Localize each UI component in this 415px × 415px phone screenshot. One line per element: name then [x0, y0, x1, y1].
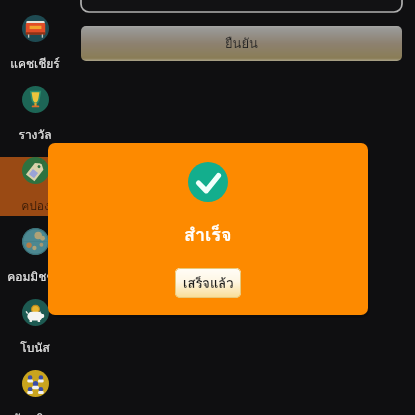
button[interactable]: เสร็จแล้ว — [175, 268, 241, 298]
button[interactable]: โบนัส — [0, 299, 70, 358]
staticText: เสร็จแล้ว — [183, 273, 234, 294]
button[interactable]: คปอง — [0, 157, 70, 216]
button[interactable]: แคชเชียร์ — [0, 15, 70, 74]
staticText: คอมมิชชั่น — [7, 267, 63, 286]
button[interactable]: ยืนยัน — [81, 26, 402, 61]
button[interactable]: Amount input field — [81, 0, 402, 12]
staticText: สำเร็จ — [184, 220, 232, 249]
staticText: ยืนยัน — [225, 33, 259, 54]
button[interactable]: พันธมิตร — [0, 370, 70, 415]
staticText: แคชเชียร์ — [10, 54, 60, 73]
button[interactable]: รางวัล — [0, 86, 70, 145]
staticText: โบนัส — [20, 338, 50, 357]
staticText: คปอง — [21, 196, 50, 215]
staticText: พันธมิตร — [12, 409, 58, 415]
staticText: รางวัล — [18, 125, 52, 144]
button[interactable]: คอมมิชชั่น — [0, 228, 70, 287]
